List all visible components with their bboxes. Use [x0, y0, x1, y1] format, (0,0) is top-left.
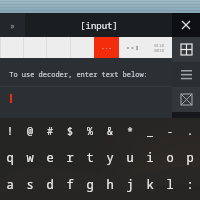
- button[interactable]: f: [60, 175, 80, 193]
- staticText: j: [126, 176, 134, 192]
- button[interactable]: -: [160, 122, 180, 140]
- button[interactable]: #: [40, 122, 60, 140]
- staticText: »: [10, 20, 15, 31]
- button[interactable]: .: [180, 122, 200, 140]
- staticText: -: [167, 124, 173, 138]
- staticText: y: [106, 149, 114, 165]
- button[interactable]: Close: [172, 13, 200, 37]
- button[interactable]: e: [40, 148, 60, 166]
- staticText: To use decoder, enter text below:: [9, 70, 148, 80]
- button[interactable]: [0, 37, 23, 58]
- staticText: *: [127, 124, 133, 138]
- button[interactable]: [119, 37, 145, 58]
- button[interactable]: 0110: [145, 37, 172, 58]
- button[interactable]: r: [60, 148, 80, 166]
- button[interactable]: l: [160, 175, 180, 193]
- staticText: _: [147, 124, 153, 138]
- button[interactable]: h: [100, 175, 120, 193]
- button[interactable]: o: [160, 148, 180, 166]
- button[interactable]: y: [100, 148, 120, 166]
- button[interactable]: ···: [94, 37, 119, 58]
- button[interactable]: !: [0, 122, 20, 140]
- staticText: s: [26, 176, 34, 192]
- button[interactable]: s: [20, 175, 40, 193]
- button[interactable]: @: [20, 122, 40, 140]
- button[interactable]: [23, 37, 46, 58]
- staticText: u: [126, 149, 134, 165]
- staticText: [input]: [80, 19, 118, 31]
- button[interactable]: i: [140, 148, 160, 166]
- staticText: i: [146, 149, 154, 165]
- button[interactable]: List view: [172, 62, 200, 87]
- staticText: ···: [101, 44, 112, 52]
- staticText: $: [67, 124, 73, 138]
- staticText: #: [47, 124, 53, 138]
- staticText: %: [87, 124, 93, 138]
- button[interactable]: q: [0, 148, 20, 166]
- button[interactable]: &: [100, 122, 120, 140]
- button[interactable]: p: [180, 148, 200, 166]
- button[interactable]: a: [0, 175, 20, 193]
- staticText: e: [46, 149, 54, 165]
- staticText: t: [86, 149, 94, 165]
- staticText: o: [166, 149, 174, 165]
- button[interactable]: Expand panel: [0, 13, 25, 37]
- staticText: q: [6, 149, 14, 165]
- staticText: w: [26, 149, 34, 165]
- button[interactable]: t: [80, 148, 100, 166]
- staticText: k: [146, 176, 154, 192]
- staticText: !: [7, 124, 13, 138]
- staticText: :: [186, 176, 194, 192]
- button[interactable]: _: [140, 122, 160, 140]
- button[interactable]: k: [140, 175, 160, 193]
- button[interactable]: :: [180, 175, 200, 193]
- button[interactable]: No preview: [172, 87, 200, 112]
- button[interactable]: w: [20, 148, 40, 166]
- staticText: @: [27, 124, 33, 138]
- button[interactable]: u: [120, 148, 140, 166]
- staticText: d: [46, 176, 54, 192]
- button[interactable]: %: [80, 122, 100, 140]
- staticText: f: [66, 176, 74, 192]
- staticText: p: [186, 149, 194, 165]
- button[interactable]: $: [60, 122, 80, 140]
- staticText: r: [66, 149, 74, 165]
- staticText: l: [166, 176, 174, 192]
- staticText: .: [187, 124, 193, 138]
- staticText: a: [6, 176, 14, 192]
- button[interactable]: d: [40, 175, 60, 193]
- staticText: 0010: [154, 48, 164, 53]
- staticText: h: [106, 176, 114, 192]
- button[interactable]: j: [120, 175, 140, 193]
- button[interactable]: *: [120, 122, 140, 140]
- staticText: 0110: [154, 43, 164, 48]
- staticText: g: [86, 176, 94, 192]
- button[interactable]: Grid view: [172, 37, 200, 62]
- staticText: &: [107, 124, 113, 138]
- button[interactable]: g: [80, 175, 100, 193]
